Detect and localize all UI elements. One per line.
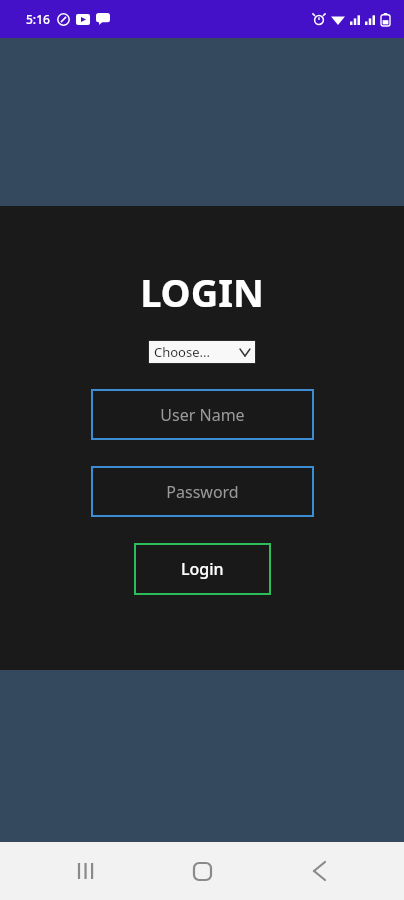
staticText: Login (181, 558, 224, 580)
button[interactable]: User Name (91, 389, 314, 440)
button[interactable]: Choose... (148, 340, 256, 364)
button[interactable]: Password (91, 466, 314, 517)
button[interactable]: Home (171, 842, 233, 900)
button[interactable]: Recent apps (55, 842, 117, 900)
button[interactable]: Login (134, 543, 271, 595)
staticText: User Name (160, 404, 245, 426)
staticText: LOGIN (140, 266, 264, 318)
staticText: Password (166, 481, 239, 503)
staticText: Choose... (154, 343, 210, 361)
staticText: 5:16 (26, 11, 50, 27)
button[interactable]: Back (288, 842, 350, 900)
